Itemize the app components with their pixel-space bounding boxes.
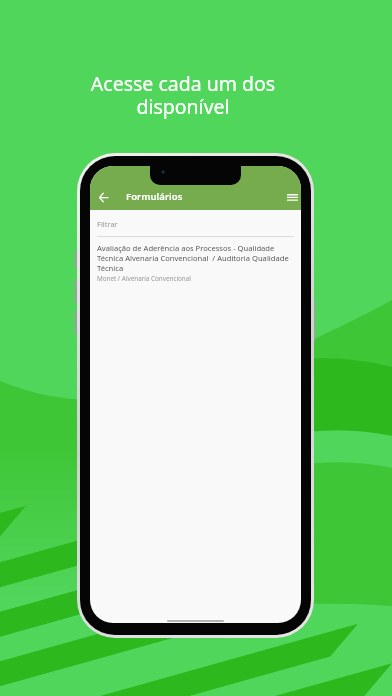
staticText: Acesse cada um dos disponível [53,70,313,120]
button[interactable]: Back [94,188,112,206]
button[interactable]: Menu [283,188,301,206]
staticText: Filtrar [97,219,118,229]
staticText: Formulários [126,190,183,203]
staticText: Monet / Alvenaria Convencional [97,274,191,283]
staticText: Avaliação de Aderência aos Processos - Q… [97,243,294,273]
